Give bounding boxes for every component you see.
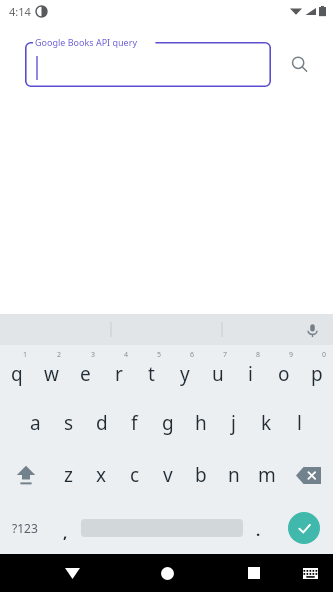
button[interactable]: 8 bbox=[234, 345, 267, 397]
staticText: v bbox=[163, 462, 173, 488]
staticText: s bbox=[64, 410, 74, 436]
staticText: m bbox=[258, 462, 276, 488]
staticText: 4:14 bbox=[9, 4, 31, 19]
button[interactable]: Enter bbox=[274, 501, 333, 554]
staticText: ?123 bbox=[12, 520, 38, 536]
staticText: z bbox=[64, 462, 73, 488]
staticText: 2 bbox=[57, 350, 62, 360]
staticText: . bbox=[256, 520, 261, 540]
staticText: 7 bbox=[223, 350, 228, 360]
button[interactable]: 0 bbox=[300, 345, 333, 397]
staticText: 6 bbox=[190, 350, 195, 360]
button[interactable]: Shift bbox=[0, 449, 51, 501]
staticText: f bbox=[131, 410, 138, 436]
button[interactable]: k bbox=[250, 397, 283, 449]
button[interactable]: Backspace bbox=[283, 449, 333, 501]
staticText: u bbox=[212, 361, 224, 387]
button[interactable]: h bbox=[184, 397, 217, 449]
button[interactable]: Voice input bbox=[301, 319, 323, 341]
button[interactable]: f bbox=[118, 397, 151, 449]
staticText: y bbox=[180, 361, 190, 387]
button[interactable]: g bbox=[151, 397, 184, 449]
button[interactable]: b bbox=[184, 449, 217, 501]
staticText: j bbox=[231, 410, 236, 436]
button[interactable]: 3 bbox=[68, 345, 102, 397]
button[interactable]: . bbox=[243, 501, 274, 554]
staticText: c bbox=[130, 462, 140, 488]
button[interactable]: 9 bbox=[267, 345, 300, 397]
staticText: 3 bbox=[91, 350, 96, 360]
staticText: i bbox=[248, 361, 253, 387]
button[interactable]: j bbox=[217, 397, 250, 449]
staticText: o bbox=[278, 361, 290, 387]
staticText: q bbox=[11, 361, 23, 387]
staticText: Google Books API query bbox=[35, 36, 137, 48]
button[interactable]: n bbox=[217, 449, 250, 501]
button[interactable]: z bbox=[51, 449, 85, 501]
button[interactable]: l bbox=[283, 397, 316, 449]
button[interactable]: 7 bbox=[201, 345, 234, 397]
staticText: 0 bbox=[322, 350, 327, 360]
staticText: , bbox=[63, 522, 68, 542]
staticText: r bbox=[115, 361, 123, 387]
button[interactable]: a bbox=[18, 397, 52, 449]
button[interactable]: Home bbox=[150, 556, 184, 590]
button[interactable]: Space bbox=[81, 501, 243, 554]
staticText: t bbox=[148, 361, 155, 387]
button[interactable]: 1 bbox=[0, 345, 34, 397]
staticText: 1 bbox=[23, 350, 28, 360]
staticText: a bbox=[30, 410, 41, 436]
staticText: l bbox=[297, 410, 302, 436]
staticText: g bbox=[162, 410, 174, 436]
staticText: x bbox=[96, 462, 107, 488]
button[interactable]: 2 bbox=[34, 345, 68, 397]
staticText: h bbox=[195, 410, 207, 436]
button[interactable]: 4 bbox=[102, 345, 135, 397]
staticText: 4 bbox=[124, 350, 129, 360]
button[interactable]: s bbox=[52, 397, 85, 449]
button[interactable]: v bbox=[151, 449, 184, 501]
staticText: p bbox=[311, 361, 323, 387]
button[interactable]: 5 bbox=[135, 345, 168, 397]
staticText: b bbox=[195, 462, 207, 488]
staticText: d bbox=[96, 410, 108, 436]
button[interactable]: , bbox=[50, 501, 81, 554]
button[interactable]: x bbox=[85, 449, 118, 501]
staticText: 8 bbox=[256, 350, 261, 360]
button[interactable]: ?123 bbox=[0, 501, 50, 554]
button[interactable]: 6 bbox=[168, 345, 201, 397]
button[interactable]: c bbox=[118, 449, 151, 501]
staticText: 5 bbox=[157, 350, 162, 360]
staticText: 9 bbox=[289, 350, 294, 360]
staticText: k bbox=[261, 410, 272, 436]
button[interactable] bbox=[25, 42, 271, 87]
button[interactable]: m bbox=[250, 449, 283, 501]
staticText: e bbox=[80, 361, 91, 387]
button[interactable]: d bbox=[85, 397, 118, 449]
button[interactable]: Search bbox=[285, 50, 313, 78]
button[interactable]: Back bbox=[55, 556, 89, 590]
button[interactable]: Recents bbox=[237, 556, 271, 590]
button[interactable]: Switch keyboard bbox=[295, 558, 325, 588]
staticText: n bbox=[228, 462, 240, 488]
staticText: w bbox=[44, 361, 59, 387]
